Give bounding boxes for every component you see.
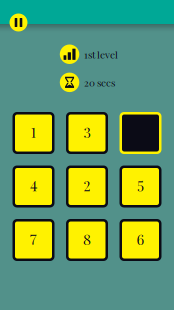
staticText: 1st level bbox=[84, 48, 118, 61]
button[interactable]: Pause bbox=[9, 13, 27, 31]
button[interactable]: 8 bbox=[66, 219, 108, 261]
staticText: 7 bbox=[30, 230, 37, 248]
button[interactable]: Empty slot bbox=[119, 112, 161, 154]
button[interactable]: 4 bbox=[12, 165, 54, 207]
button[interactable]: 7 bbox=[12, 219, 54, 261]
staticText: 6 bbox=[136, 230, 144, 248]
staticText: 20 secs bbox=[84, 76, 115, 89]
staticText: 5 bbox=[137, 176, 144, 195]
staticText: 3 bbox=[83, 123, 90, 141]
button[interactable]: 3 bbox=[66, 112, 108, 154]
button[interactable]: 1 bbox=[12, 112, 54, 154]
staticText: 4 bbox=[30, 176, 37, 195]
staticText: 2 bbox=[83, 176, 90, 195]
staticText: 1 bbox=[31, 123, 36, 141]
staticText: 8 bbox=[83, 230, 91, 248]
button[interactable]: 5 bbox=[119, 165, 161, 207]
button[interactable]: 2 bbox=[66, 165, 108, 207]
button[interactable]: 6 bbox=[119, 219, 161, 261]
